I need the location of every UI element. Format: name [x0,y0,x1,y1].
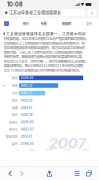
staticText: 无锡 [12,83,18,88]
staticText: 500 [29,148,35,151]
staticText: 1968.32 [20,84,32,87]
staticText: 1000 [46,148,53,151]
staticText: 2851.41 [20,134,31,138]
staticText: 扬州市 [9,127,18,132]
button[interactable]: Site home [4,21,9,26]
button[interactable]: Bookmarks [71,168,83,178]
staticText: 南通 [12,105,18,110]
staticText: 4403.12 [20,98,32,102]
button[interactable]: 扬州市 [3,126,95,133]
staticText: 泰州 [12,141,18,146]
button[interactable]: Tabs [83,168,95,178]
button[interactable]: 排行 [21,21,30,26]
button[interactable]: Back [4,168,16,178]
staticText: 徐州 [12,112,18,117]
staticText: ⌂ [90,10,93,15]
staticText: 3036.82 [20,76,33,80]
staticText: 供研究参考。数据来源为省统计局发布的年度国民经济公报， [3,54,84,59]
staticText: 点击下方条目可查看各设区市分项明细与同比增速的情况。 [3,68,81,72]
staticText: 10:08 [7,1,23,8]
button[interactable]: Reader view [87,9,96,16]
staticText: 排行 [22,21,28,26]
button[interactable]: 苏州 [3,89,95,97]
staticText: 造业增加值连续多年稳居全国前列，成为拉动全国工业增长的 [3,45,84,50]
staticText: 南京 [12,75,18,80]
button[interactable]: 淮安市区 [3,133,95,140]
staticText: 2000 [81,148,89,151]
staticText: 的发展机遇，近20年来江苏省的工业总产值实现跨越式的增长， [3,36,88,41]
button[interactable]: 徐州 [3,111,95,118]
staticText: 常州 [12,98,18,103]
button[interactable]: 南通 [3,104,95,111]
staticText: 盐城市 [9,120,18,124]
staticText: 数据榜 [62,21,71,26]
button[interactable]: 常州 [3,97,95,104]
button[interactable]: 更多 [85,21,93,26]
staticText: 4402.97 [20,127,33,131]
button[interactable]: 盐城市 [3,118,95,126]
staticText: 0 [16,148,18,151]
staticText: 1566.22 [20,91,32,95]
staticText: 淮安市区 [6,134,18,139]
staticText: 更多 [86,21,92,26]
staticText: 2766.54 [20,142,33,146]
staticText: 1500 [64,148,71,151]
button[interactable]: 泰州 [3,140,95,147]
staticText: 专题 [40,21,46,26]
staticText: 工业增加值增速排名全国第一，江苏稳中向好 [6,31,86,36]
staticText: 全省规模以上工业增加值年均增速长期保持在两位数水平，制 [3,41,84,45]
button[interactable]: Share [43,168,55,178]
staticText: 江苏20年各省工业增加值增长 [9,10,61,16]
button[interactable]: 专题 [39,21,48,26]
staticText: 4461.67 [20,106,32,110]
staticText: 4406.85 [20,120,33,124]
staticText: 2007 [48,135,86,152]
staticText: 重要力量。下表汇总了主要年度全省工业增加值的统计数据， [3,50,84,54]
staticText: 苏州 [12,91,18,95]
staticText: 4382.19 [20,113,32,117]
button[interactable]: 数据榜 [61,21,72,26]
button[interactable]: Forward [16,168,28,178]
staticText: 需要说明的是，统计口径在2011年和2017年分别作过调整， [3,63,85,68]
button[interactable]: 江苏20年各省工业增加值增长 [3,9,85,16]
staticText: 单位为亿元人民币（当年价格），部分年度数据经过口径调整。 [3,59,87,63]
button[interactable]: 无锡 [3,82,95,89]
button[interactable]: 南京 [3,74,95,82]
